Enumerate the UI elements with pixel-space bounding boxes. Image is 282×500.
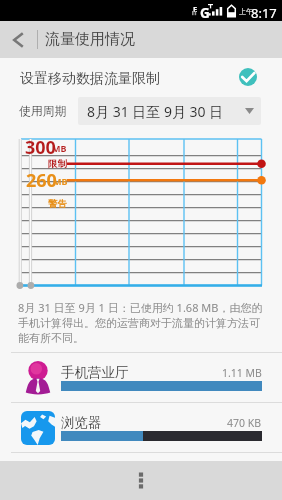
staticText: MB — [53, 175, 68, 187]
button[interactable]: 浏览器 — [0, 403, 282, 452]
staticText: 浏览器 — [61, 414, 102, 431]
staticText: 8月 31 日至 9月 1 日：已使用约 1.68 MB，由您的手机计算得出。您… — [18, 300, 268, 345]
staticText: MB — [52, 142, 67, 154]
staticText: 上午 — [239, 7, 253, 16]
staticText: 1.11 MB — [222, 366, 262, 380]
button[interactable]: Back — [0, 21, 37, 58]
staticText: 手机营业厅 — [61, 364, 129, 381]
staticText: 300 — [25, 135, 56, 160]
staticText: E — [193, 4, 198, 14]
staticText: 流量使用情况 — [45, 30, 135, 49]
button[interactable]: 设置移动数据流量限制 — [0, 58, 282, 96]
button[interactable]: 8月 31 日至 9月 30 日 — [78, 97, 261, 125]
staticText: 8:17 — [251, 4, 277, 22]
staticText: 使用周期 — [19, 104, 67, 119]
staticText: 限制 — [48, 158, 67, 170]
staticText: G — [200, 4, 210, 22]
staticText: 260 — [26, 168, 57, 193]
staticText: 警告 — [48, 198, 67, 210]
staticText: 470 KB — [227, 416, 262, 430]
staticText: 8月 31 日至 9月 30 日 — [87, 102, 224, 121]
button[interactable]: More options — [123, 461, 159, 500]
button[interactable]: 手机营业厅 — [0, 353, 282, 402]
staticText: 设置移动数据流量限制 — [20, 70, 160, 88]
